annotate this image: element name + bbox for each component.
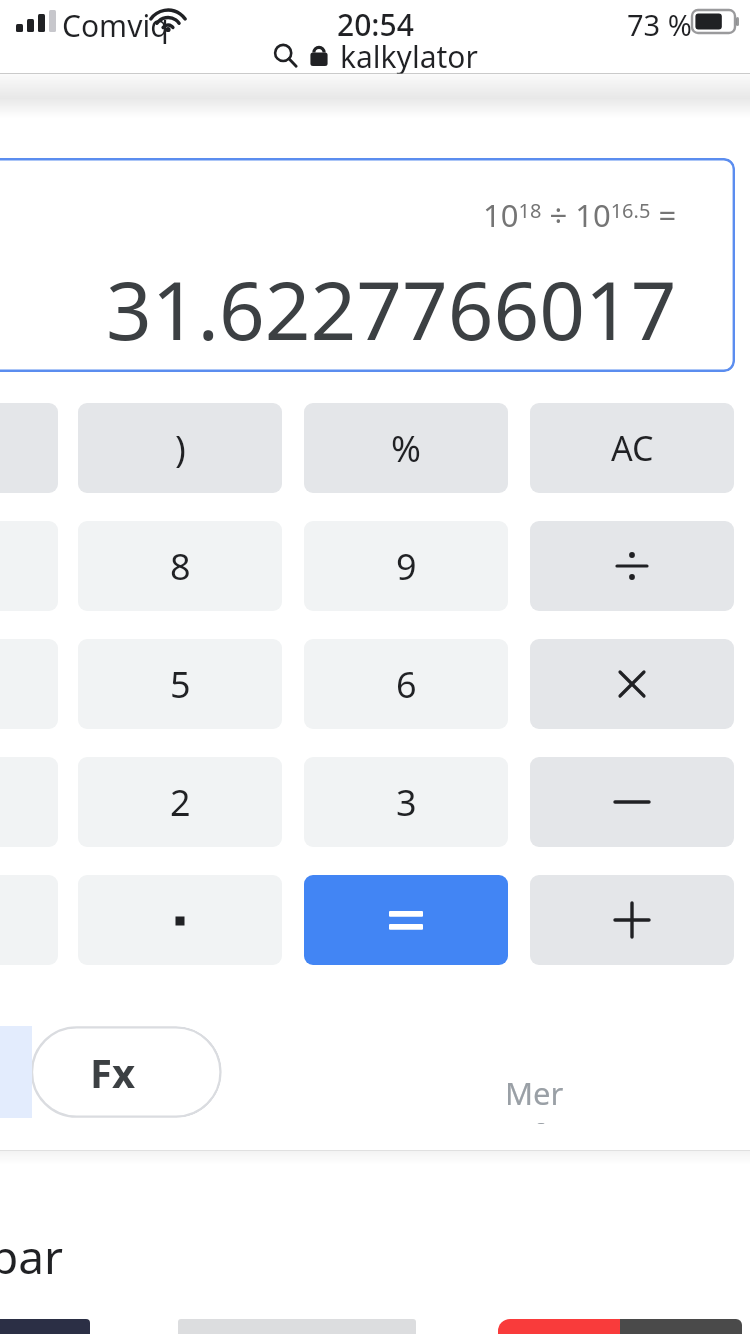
button[interactable]: Result thumbnail 4 bbox=[620, 1319, 742, 1334]
staticText: 1018 ÷ 1016.5 = bbox=[483, 194, 677, 236]
button[interactable]: 5 bbox=[78, 639, 282, 729]
staticText: Fx bbox=[90, 1045, 136, 1099]
button[interactable]: Subtract bbox=[530, 757, 734, 847]
staticText: 31.6227766017 bbox=[106, 254, 677, 363]
button[interactable]: Divide bbox=[530, 521, 734, 611]
button[interactable]: 1018 ÷ 1016.5 = bbox=[0, 158, 735, 372]
staticText: 9 bbox=[396, 542, 417, 591]
button[interactable]: Address bar: kalkylator bbox=[0, 36, 750, 74]
staticText: 8 bbox=[170, 542, 191, 591]
button[interactable]: Add bbox=[530, 875, 734, 965]
staticText: AC bbox=[611, 425, 654, 471]
staticText: ) bbox=[175, 424, 186, 473]
staticText: 6 bbox=[396, 660, 417, 709]
staticText: 73 % bbox=[627, 5, 692, 44]
button[interactable]: 3 bbox=[304, 757, 508, 847]
staticText: 3 bbox=[396, 778, 417, 827]
button[interactable]: 9 bbox=[304, 521, 508, 611]
staticText: Comviq bbox=[62, 5, 169, 45]
button[interactable]: ) bbox=[78, 403, 282, 493]
staticText: Mer information bbox=[505, 1072, 740, 1124]
button[interactable]: Decimal point bbox=[78, 875, 282, 965]
staticText: % bbox=[391, 424, 421, 473]
button[interactable]: 6 bbox=[304, 639, 508, 729]
button[interactable]: Equals bbox=[304, 875, 508, 965]
button[interactable]: 8 bbox=[78, 521, 282, 611]
button[interactable]: 2 bbox=[78, 757, 282, 847]
staticText: 2 bbox=[170, 778, 191, 827]
staticText: kalkylator bbox=[340, 36, 478, 74]
button[interactable]: Fx bbox=[0, 1026, 222, 1118]
staticText: 20:54 bbox=[337, 4, 414, 44]
staticText: par bbox=[0, 1225, 64, 1288]
button[interactable]: % bbox=[304, 403, 508, 493]
button[interactable]: Result thumbnail 1 bbox=[0, 1319, 90, 1334]
button[interactable]: Result thumbnail 3 bbox=[498, 1319, 620, 1334]
staticText: 5 bbox=[170, 660, 191, 709]
button[interactable]: Mer information bbox=[505, 1072, 740, 1124]
button[interactable]: Multiply bbox=[530, 639, 734, 729]
button[interactable]: AC bbox=[530, 403, 734, 493]
